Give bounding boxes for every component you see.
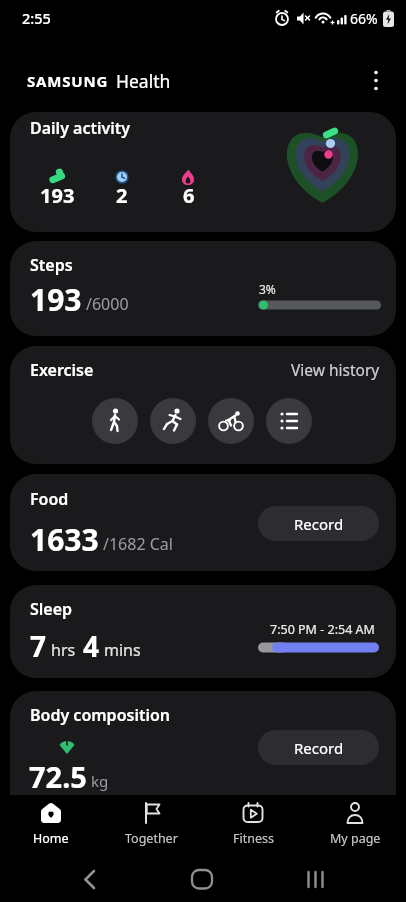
button[interactable]: Together [101, 795, 202, 860]
staticText: 3% [259, 281, 276, 297]
staticText: Steps [30, 254, 73, 276]
button[interactable]: Sleep [10, 585, 396, 678]
staticText: 193 [30, 279, 82, 320]
staticText: mins [104, 639, 141, 661]
staticText: Food [30, 488, 69, 510]
staticText: My page [330, 830, 381, 847]
button[interactable] [372, 69, 380, 93]
button[interactable] [208, 398, 254, 444]
staticText: Sleep [30, 598, 73, 620]
staticText: hrs [51, 639, 76, 661]
button[interactable]: Daily activity [10, 112, 396, 232]
button[interactable]: Record [258, 506, 379, 541]
staticText: Fitness [233, 830, 274, 847]
staticText: kg [91, 771, 109, 791]
button[interactable] [92, 398, 138, 444]
staticText: Body composition [30, 704, 171, 726]
staticText: Daily activity [30, 117, 131, 139]
staticText: 4 [83, 627, 100, 665]
staticText: Record [294, 738, 344, 758]
staticText: Home [33, 830, 69, 847]
button[interactable]: Record [258, 730, 379, 765]
staticText: 72.5 [29, 757, 87, 795]
button[interactable]: View history [291, 359, 380, 380]
button[interactable]: Body composition [10, 691, 396, 795]
button[interactable]: Steps [10, 241, 396, 336]
staticText: 1633 [30, 519, 99, 560]
staticText: 6 [183, 182, 195, 209]
staticText: /1682 Cal [103, 533, 173, 555]
staticText: Exercise [30, 359, 94, 381]
staticText: SAMSUNG [27, 71, 109, 91]
button[interactable] [266, 398, 312, 444]
staticText: Health [116, 69, 171, 93]
button[interactable]: My page [304, 795, 406, 860]
button[interactable]: Exercise [10, 346, 396, 464]
staticText: Record [294, 514, 344, 534]
staticText: /6000 [86, 293, 129, 315]
button[interactable]: Home [0, 795, 101, 860]
staticText: 7 [30, 627, 47, 665]
staticText: Together [125, 830, 178, 847]
staticText: 66% [350, 9, 378, 28]
staticText: 2 [116, 182, 128, 209]
staticText: 193 [40, 182, 75, 209]
staticText: 7:50 PM - 2:54 AM [270, 621, 375, 638]
staticText: 2:55 [22, 8, 51, 28]
button[interactable]: Food [10, 474, 396, 571]
button[interactable]: Fitness [202, 795, 304, 860]
button[interactable] [150, 398, 196, 444]
